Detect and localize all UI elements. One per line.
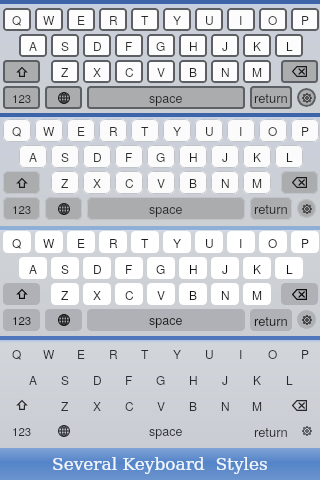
button[interactable]: T [131,119,159,142]
button[interactable]: V [147,283,175,305]
button[interactable]: L [275,368,303,390]
button[interactable]: space [87,86,245,109]
button[interactable]: Settings [297,199,316,218]
button[interactable]: N [211,283,239,305]
button[interactable]: A [19,257,47,279]
button[interactable]: U [195,342,223,364]
button[interactable]: P [291,8,319,31]
button[interactable]: G [147,145,175,168]
button[interactable]: Y [163,342,191,364]
button[interactable]: P [291,231,319,253]
button[interactable]: D [83,257,111,279]
button[interactable]: Y [163,119,191,142]
button[interactable]: B [179,283,207,305]
button[interactable]: M [243,394,271,416]
button[interactable]: B [179,60,207,83]
button[interactable]: N [211,394,239,416]
button[interactable]: T [131,8,159,31]
button[interactable]: P [291,119,319,142]
button[interactable]: C [115,283,143,305]
button[interactable]: X [83,60,111,83]
button[interactable]: U [195,119,223,142]
button[interactable]: N [211,60,239,83]
button[interactable]: I [227,231,255,253]
button[interactable]: Switch language [45,197,82,220]
button[interactable]: Z [51,171,79,194]
button[interactable]: T [131,342,159,364]
button[interactable]: O [259,119,287,142]
button[interactable]: Y [163,8,191,31]
button[interactable]: space [87,197,245,220]
button[interactable]: W [35,8,63,31]
button[interactable]: Q [3,342,31,364]
button[interactable]: L [275,257,303,279]
button[interactable]: M [243,283,271,305]
button[interactable]: U [195,8,223,31]
button[interactable]: G [147,257,175,279]
button[interactable]: W [35,231,63,253]
button[interactable]: Q [3,119,31,142]
button[interactable]: Q [3,8,31,31]
button[interactable]: Settings [297,421,316,440]
button[interactable]: M [243,171,271,194]
button[interactable]: K [243,368,271,390]
button[interactable]: V [147,171,175,194]
button[interactable]: W [35,119,63,142]
button[interactable]: space [87,420,245,442]
button[interactable]: V [147,394,175,416]
button[interactable]: F [115,34,143,57]
button[interactable]: D [83,34,111,57]
button[interactable]: J [211,145,239,168]
button[interactable]: A [19,34,47,57]
button[interactable]: C [115,171,143,194]
button[interactable]: return [250,197,292,220]
button[interactable]: D [83,145,111,168]
button[interactable]: Q [3,231,31,253]
button[interactable]: W [35,342,63,364]
button[interactable]: O [259,231,287,253]
button[interactable]: P [291,342,319,364]
button[interactable]: Shift [3,394,40,416]
button[interactable]: Settings [297,88,316,107]
button[interactable]: 123 [3,420,40,442]
button[interactable]: V [147,60,175,83]
button[interactable]: R [99,119,127,142]
button[interactable]: 123 [3,309,40,331]
button[interactable]: X [83,394,111,416]
button[interactable]: Z [51,394,79,416]
button[interactable]: A [19,368,47,390]
button[interactable]: H [179,257,207,279]
button[interactable]: B [179,394,207,416]
button[interactable]: F [115,368,143,390]
button[interactable]: Backspace [281,283,318,305]
button[interactable]: Backspace [281,394,318,416]
button[interactable]: H [179,34,207,57]
button[interactable]: Backspace [281,60,318,83]
button[interactable]: I [227,119,255,142]
button[interactable]: S [51,145,79,168]
button[interactable]: I [227,342,255,364]
button[interactable]: U [195,231,223,253]
button[interactable]: S [51,34,79,57]
button[interactable]: K [243,145,271,168]
button[interactable]: S [51,257,79,279]
button[interactable]: C [115,60,143,83]
button[interactable]: Shift [3,171,40,194]
button[interactable]: L [275,145,303,168]
button[interactable]: E [67,342,95,364]
button[interactable]: A [19,145,47,168]
button[interactable]: return [250,309,292,331]
button[interactable]: O [259,8,287,31]
button[interactable]: M [243,60,271,83]
button[interactable]: 123 [3,197,40,220]
button[interactable]: Z [51,60,79,83]
button[interactable]: J [211,34,239,57]
button[interactable]: G [147,368,175,390]
button[interactable]: F [115,145,143,168]
button[interactable]: K [243,34,271,57]
button[interactable]: C [115,394,143,416]
button[interactable]: L [275,34,303,57]
button[interactable]: Shift [3,60,40,83]
button[interactable]: Z [51,283,79,305]
button[interactable]: X [83,283,111,305]
